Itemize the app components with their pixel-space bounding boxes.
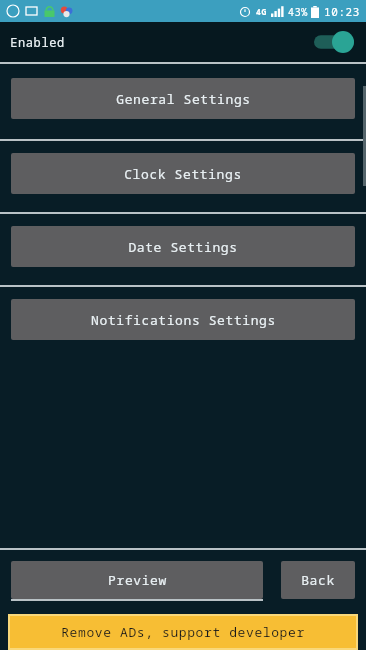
staticText: Enabled	[10, 34, 65, 50]
staticText: Back	[301, 571, 335, 589]
staticText: General Settings	[116, 90, 251, 108]
staticText: 43%	[288, 5, 308, 19]
button[interactable]: Clock Settings	[11, 153, 355, 194]
staticText: Notifications Settings	[91, 311, 276, 329]
staticText: Remove ADs, support developer	[61, 623, 305, 641]
button[interactable]: Date Settings	[11, 226, 355, 267]
staticText: Preview	[108, 571, 167, 589]
button[interactable]: General Settings	[11, 78, 355, 119]
staticText: 4G	[256, 6, 267, 17]
button[interactable]: Remove ADs, support developer	[10, 616, 356, 648]
staticText: Clock Settings	[124, 165, 242, 183]
button[interactable]: Notifications Settings	[11, 299, 355, 340]
staticText: 10:23	[324, 4, 360, 19]
button[interactable]: Back	[281, 561, 355, 599]
staticText: Date Settings	[128, 238, 238, 256]
button[interactable]: Enabled	[0, 22, 366, 62]
button[interactable]: Preview	[11, 561, 263, 599]
